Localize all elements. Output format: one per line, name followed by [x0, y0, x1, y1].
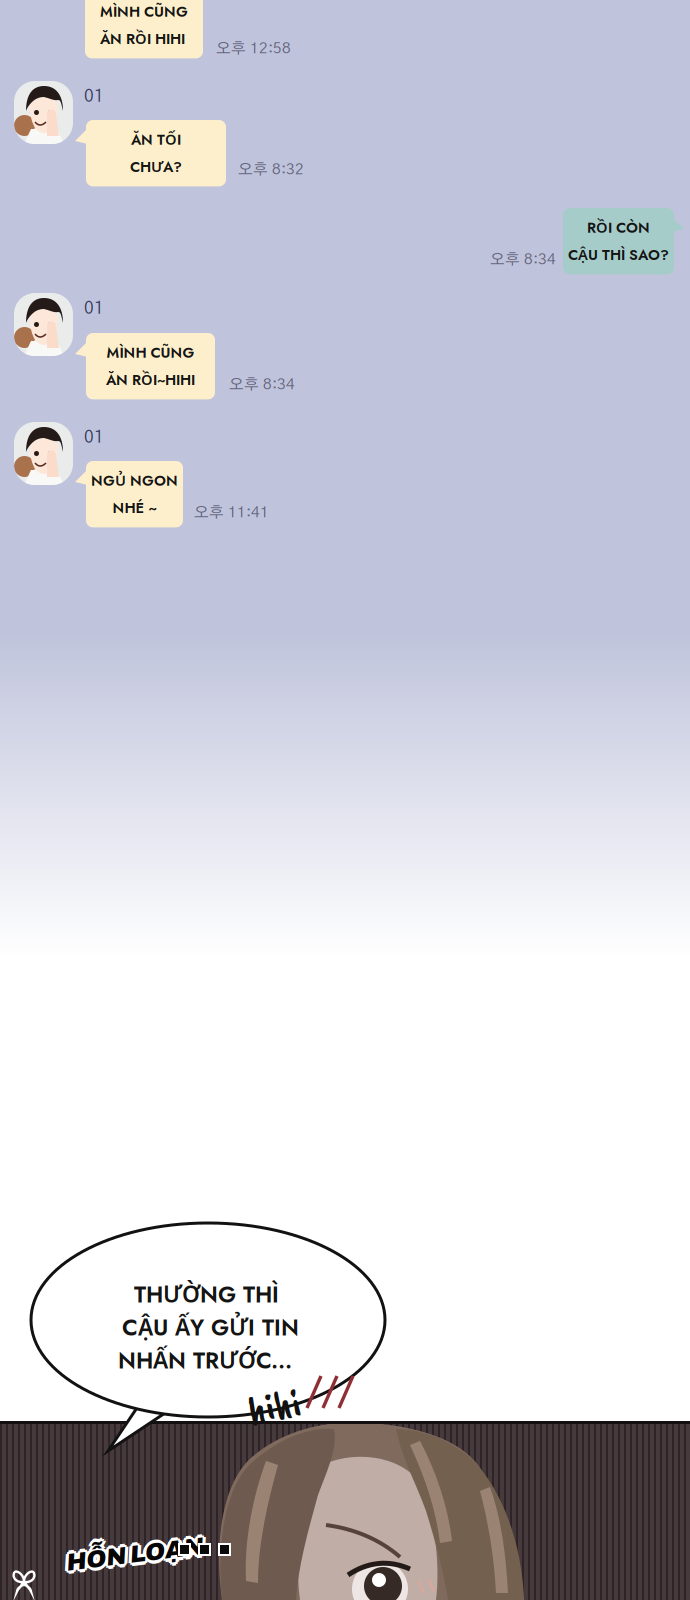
staticText: 오후 8:34	[490, 252, 556, 267]
staticText: HỖN LOẠN	[66, 1538, 204, 1564]
staticText: THƯỜNG THÌ	[134, 1278, 279, 1311]
staticText: HỖN LOẠN	[63, 1541, 201, 1567]
staticText: HỖN LOẠN	[66, 1544, 204, 1570]
staticText: HỖN LOẠN	[64, 1543, 202, 1569]
staticText: HỖN LOẠN	[63, 1541, 201, 1567]
staticText: 오후 11:41	[194, 505, 269, 520]
staticText: CẬU ẤY GỬI TIN	[122, 1311, 299, 1344]
staticText: HỖN LOẠN	[69, 1541, 207, 1567]
staticText: HỖN LOẠN	[69, 1541, 207, 1567]
staticText: HỖN LOẠN	[68, 1539, 206, 1565]
staticText: NHẤN TRƯỚC...	[118, 1344, 292, 1377]
staticText: ĂN RỒI~HIHI	[106, 369, 195, 390]
staticText: NHÉ ~	[112, 497, 156, 518]
staticText: MÌNH CŨNG	[100, 1, 188, 22]
staticText: NGỦ NGON	[91, 470, 178, 491]
staticText: 01	[84, 429, 104, 446]
staticText: HỖN LOẠN	[68, 1543, 206, 1569]
staticText: 오후 8:34	[229, 377, 295, 392]
staticText: CHƯA?	[130, 156, 182, 177]
staticText: HỖN LOẠN	[66, 1538, 204, 1564]
staticText: HỖN LOẠN	[66, 1541, 204, 1567]
staticText: 오후 12:58	[216, 41, 291, 56]
staticText: HỖN LOẠN	[66, 1544, 204, 1570]
staticText: ĂN TỐI	[131, 129, 181, 150]
staticText: ĂN RỒI HIHI	[100, 28, 185, 49]
staticText: HỖN LOẠN	[64, 1539, 202, 1565]
staticText: RỒI CÒN	[587, 217, 650, 238]
staticText: hihi	[248, 1381, 300, 1431]
staticText: CẬU THÌ SAO?	[568, 244, 669, 265]
staticText: MÌNH CŨNG	[106, 342, 194, 363]
staticText: 01	[84, 300, 104, 317]
staticText: 01	[84, 88, 104, 105]
staticText: 오후 8:32	[238, 162, 304, 177]
